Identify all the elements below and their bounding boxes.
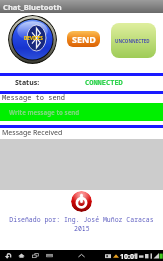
staticText: Diseñado por: Ing. José Muñoz Caracas bbox=[9, 215, 154, 224]
staticText: DEVICES bbox=[24, 35, 43, 41]
staticText: Message to send bbox=[2, 93, 65, 103]
button[interactable]: UNCONNECTED bbox=[111, 23, 156, 58]
staticText: Status: bbox=[15, 78, 40, 88]
button[interactable]: Write message to send bbox=[0, 103, 163, 121]
button[interactable]: Back bbox=[2, 250, 13, 261]
staticText: Write message to send bbox=[9, 108, 80, 116]
button[interactable]: Exit bbox=[71, 191, 92, 212]
button[interactable]: Home bbox=[16, 250, 27, 261]
staticText: Message Received bbox=[2, 128, 63, 138]
button[interactable]: Menu bbox=[44, 250, 55, 261]
staticText: UNCONNECTED bbox=[115, 38, 150, 44]
staticText: 10:01 bbox=[120, 252, 138, 261]
button[interactable]: Recent apps bbox=[30, 250, 41, 261]
button[interactable]: Devices bbox=[8, 15, 57, 64]
staticText: Chat_Bluetooth bbox=[3, 2, 62, 12]
staticText: SEND bbox=[72, 33, 96, 45]
staticText: 2015 bbox=[74, 224, 90, 233]
button[interactable]: SEND bbox=[67, 31, 100, 47]
button[interactable]: Expand bbox=[76, 250, 87, 261]
staticText: CONNECTED bbox=[85, 78, 123, 88]
